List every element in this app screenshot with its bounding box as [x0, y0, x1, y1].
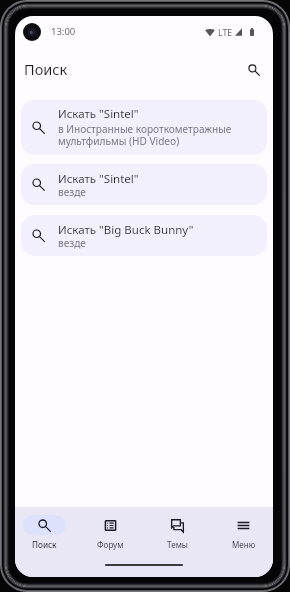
button[interactable]: Искать "Sintel": [21, 100, 267, 155]
staticText: везде: [58, 185, 86, 199]
staticText: Темы: [167, 539, 188, 550]
staticText: везде: [58, 236, 86, 250]
staticText: 13:00: [51, 25, 76, 38]
button[interactable]: Искать "Sintel": [21, 164, 267, 205]
staticText: Форум: [97, 539, 124, 550]
button[interactable]: Форум: [89, 507, 132, 554]
staticText: мультфильмы (HD Video): [58, 134, 180, 148]
staticText: LTE: [218, 27, 233, 39]
button[interactable]: Поиск: [23, 507, 66, 554]
staticText: Искать "Sintel": [58, 106, 139, 122]
button[interactable]: Search: [241, 57, 267, 83]
staticText: Поиск: [24, 59, 68, 79]
staticText: Искать "Sintel": [58, 171, 139, 187]
button[interactable]: Темы: [156, 507, 199, 554]
staticText: Искать "Big Buck Bunny": [58, 222, 194, 238]
staticText: Меню: [232, 539, 256, 550]
staticText: в Иностранные короткометражные: [58, 122, 232, 136]
button[interactable]: Искать "Big Buck Bunny": [21, 215, 267, 256]
staticText: Поиск: [32, 539, 57, 550]
button[interactable]: Меню: [222, 507, 265, 554]
